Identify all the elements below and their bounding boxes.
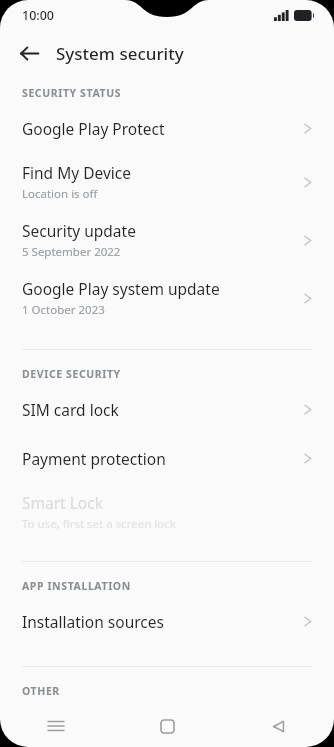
button[interactable]: Google Play system update <box>0 269 334 327</box>
staticText: SIM card lock <box>22 399 119 420</box>
staticText: System security <box>56 42 184 65</box>
staticText: OTHER <box>22 684 60 698</box>
staticText: Location is off <box>22 186 98 202</box>
staticText: 1 October 2023 <box>22 302 105 318</box>
button[interactable]: Home <box>112 705 223 747</box>
staticText: Installation sources <box>22 611 164 632</box>
button[interactable]: Google Play Protect <box>0 104 334 153</box>
button[interactable]: Recent apps <box>0 705 112 747</box>
button[interactable]: Security update <box>0 211 334 269</box>
button[interactable]: Payment protection <box>0 434 334 483</box>
staticText: APP INSTALLATION <box>22 579 131 593</box>
staticText: 5 September 2022 <box>22 244 121 260</box>
button[interactable]: Back <box>223 705 334 747</box>
staticText: Smart Lock <box>22 492 103 513</box>
button[interactable]: Find My Device <box>0 153 334 211</box>
staticText: DEVICE SECURITY <box>22 367 121 381</box>
staticText: Google Play system update <box>22 278 220 299</box>
staticText: 10:00 <box>22 7 55 24</box>
staticText: Find My Device <box>22 162 131 183</box>
staticText: Security update <box>22 220 136 241</box>
button[interactable]: SIM card lock <box>0 385 334 434</box>
button[interactable]: Installation sources <box>0 597 334 646</box>
staticText: Google Play Protect <box>22 118 165 139</box>
staticText: SECURITY STATUS <box>22 86 122 100</box>
button: Smart Lock <box>0 483 334 541</box>
staticText: To use, first set a screen lock <box>22 516 176 532</box>
button[interactable]: Back <box>10 34 48 72</box>
staticText: Payment protection <box>22 448 166 469</box>
